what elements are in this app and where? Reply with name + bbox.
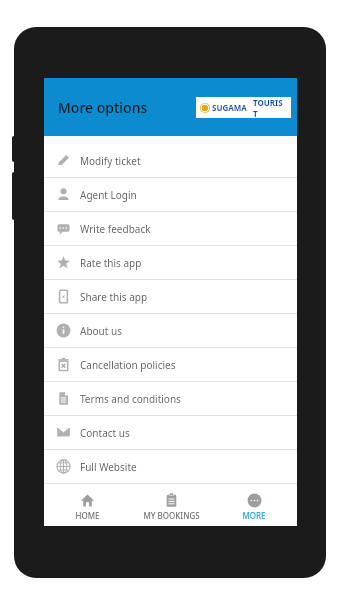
button[interactable]: Full Website [44,450,297,483]
staticText: SUGAMA [212,102,247,113]
button[interactable]: Contact us [44,416,297,449]
staticText: Write feedback [80,222,151,236]
staticText: Share this app [80,290,148,304]
button[interactable]: HOME [46,493,128,521]
staticText: More options [58,98,148,117]
staticText: TOURIST [253,97,287,118]
button[interactable]: Write feedback [44,212,297,245]
button[interactable]: MORE [213,493,295,521]
staticText: Full Website [80,460,137,474]
staticText: MORE [242,510,266,521]
button[interactable]: MY BOOKINGS [130,493,212,521]
staticText: Cancellation policies [80,358,176,372]
staticText: Rate this app [80,256,142,270]
button[interactable]: Rate this app [44,246,297,279]
staticText: Terms and conditions [80,392,181,406]
staticText: Modify ticket [80,154,141,168]
button[interactable]: Share this app [44,280,297,313]
staticText: HOME [75,510,100,521]
button[interactable]: Terms and conditions [44,382,297,415]
button[interactable]: Agent Login [44,178,297,211]
staticText: Agent Login [80,188,137,202]
staticText: About us [80,324,122,338]
staticText: MY BOOKINGS [143,510,200,521]
button[interactable]: Modify ticket [44,144,297,177]
staticText: Contact us [80,426,130,440]
button[interactable]: About us [44,314,297,347]
button[interactable]: Cancellation policies [44,348,297,381]
